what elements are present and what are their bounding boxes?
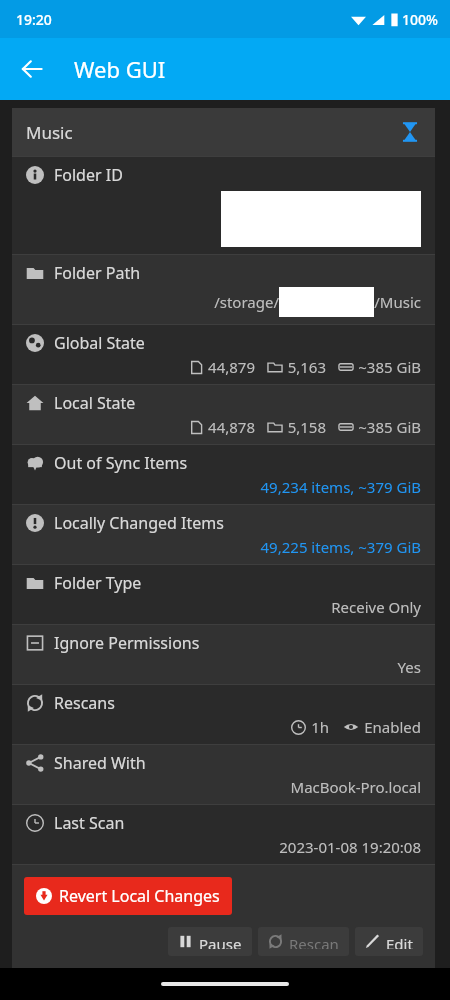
staticText: 44,879 bbox=[208, 357, 255, 377]
staticText: Global State bbox=[54, 332, 145, 354]
staticText: 1h bbox=[311, 717, 329, 737]
staticText: Yes bbox=[397, 657, 421, 677]
button[interactable]: Rescan bbox=[258, 927, 349, 956]
staticText: Folder Type bbox=[54, 572, 142, 594]
staticText: Local State bbox=[54, 392, 136, 414]
staticText: 44,878 bbox=[208, 417, 255, 437]
staticText: Rescans bbox=[54, 692, 115, 714]
staticText: Receive Only bbox=[331, 597, 421, 617]
staticText: Pause bbox=[199, 934, 242, 949]
staticText: /storage/ bbox=[214, 292, 279, 312]
staticText: ~385 GiB bbox=[358, 357, 421, 377]
button[interactable]: Pause bbox=[168, 927, 252, 956]
staticText: Revert Local Changes bbox=[59, 885, 220, 907]
staticText: 2023-01-08 19:20:08 bbox=[279, 837, 421, 857]
staticText: Out of Sync Items bbox=[54, 452, 188, 474]
staticText: Music bbox=[26, 121, 73, 144]
staticText: Last Scan bbox=[54, 812, 125, 834]
staticText: Folder Path bbox=[54, 262, 141, 284]
button[interactable]: Revert Local Changes bbox=[24, 877, 232, 915]
button[interactable]: Edit bbox=[355, 927, 423, 956]
staticText: 5,158 bbox=[287, 417, 326, 437]
button[interactable]: Back bbox=[8, 45, 56, 93]
button[interactable]: Music bbox=[26, 108, 421, 156]
staticText: Folder ID bbox=[54, 164, 123, 186]
staticText: ~385 GiB bbox=[358, 417, 421, 437]
staticText: Shared With bbox=[54, 752, 146, 774]
staticText: Enabled bbox=[364, 717, 421, 737]
staticText: 5,163 bbox=[287, 357, 326, 377]
staticText: Web GUI bbox=[74, 54, 166, 84]
staticText: 100% bbox=[402, 10, 438, 29]
staticText: 19:20 bbox=[16, 10, 52, 29]
staticText: Edit bbox=[386, 934, 413, 949]
other: Syncing bbox=[399, 121, 421, 143]
staticText: Ignore Permissions bbox=[54, 632, 200, 654]
staticText: 49,234 items, ~379 GiB bbox=[260, 477, 421, 497]
staticText: 49,225 items, ~379 GiB bbox=[260, 537, 421, 557]
staticText: Rescan bbox=[289, 934, 339, 949]
staticText: /Music bbox=[374, 292, 421, 312]
staticText: MacBook-Pro.local bbox=[290, 777, 421, 797]
staticText: Locally Changed Items bbox=[54, 512, 224, 534]
